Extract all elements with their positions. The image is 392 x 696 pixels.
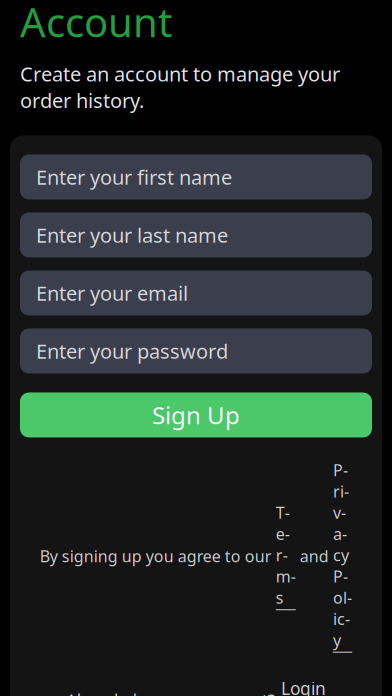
button[interactable]: Terms xyxy=(276,502,296,610)
staticText: Create an account to manage your order h… xyxy=(20,60,340,113)
staticText: Enter your password xyxy=(36,338,228,364)
staticText: Enter your first name xyxy=(36,164,232,190)
staticText: Already have an account? xyxy=(66,689,281,696)
staticText: Account xyxy=(20,0,172,48)
button[interactable]: Enter your last name xyxy=(20,212,372,257)
button[interactable]: Enter your email xyxy=(20,270,372,315)
staticText: Login here xyxy=(281,677,326,696)
staticText: By signing up you agree to our xyxy=(40,545,276,567)
button[interactable]: Enter your first name xyxy=(20,154,372,199)
staticText: Terms xyxy=(276,502,296,608)
staticText: Enter your last name xyxy=(36,222,228,248)
button[interactable]: Sign Up xyxy=(20,392,372,437)
staticText: Privacy Policy xyxy=(333,459,352,651)
button[interactable]: Login here xyxy=(281,677,326,696)
staticText: Enter your email xyxy=(36,280,188,306)
button[interactable]: Enter your password xyxy=(20,328,372,373)
button[interactable]: Privacy Policy xyxy=(333,459,352,653)
staticText: and xyxy=(296,545,333,567)
staticText: Sign Up xyxy=(152,399,240,431)
